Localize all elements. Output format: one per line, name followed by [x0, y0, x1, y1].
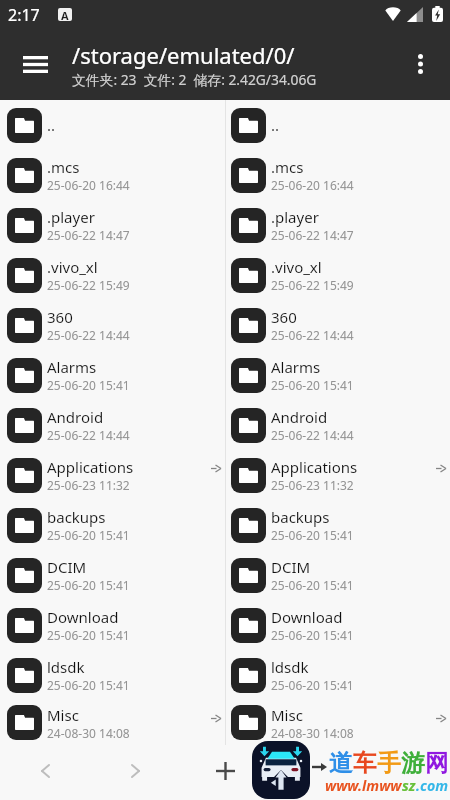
- staticText: ..: [271, 115, 280, 135]
- staticText: backups: [271, 507, 330, 527]
- button[interactable]: DCIM: [226, 550, 450, 600]
- button[interactable]: ldsdk: [226, 650, 450, 700]
- staticText: DCIM: [47, 557, 87, 577]
- staticText: 25-06-22 15:49: [47, 277, 130, 293]
- staticText: 25-06-22 14:44: [47, 327, 130, 343]
- button[interactable]: Android: [0, 400, 225, 450]
- button[interactable]: Applications: [0, 450, 225, 500]
- staticText: .player: [271, 207, 319, 227]
- staticText: DCIM: [271, 557, 311, 577]
- staticText: 25-06-22 14:44: [47, 427, 130, 443]
- button[interactable]: ldsdk: [0, 650, 225, 700]
- staticText: 文件夹: 23 文件: 2 储存: 2.42G/34.06G: [72, 70, 317, 89]
- staticText: 车: [353, 748, 377, 778]
- staticText: 25-06-22 15:49: [271, 277, 354, 293]
- staticText: 25-06-20 16:44: [271, 177, 354, 193]
- button[interactable]: Misc: [226, 700, 450, 745]
- button[interactable]: .player: [0, 200, 225, 250]
- staticText: Applications: [271, 457, 358, 477]
- button[interactable]: DCIM: [0, 550, 225, 600]
- staticText: 25-06-22 14:47: [47, 227, 130, 243]
- staticText: ..: [47, 115, 56, 135]
- staticText: .com: [416, 776, 449, 795]
- staticText: www.lmww: [325, 776, 402, 795]
- staticText: 25-06-20 15:41: [271, 377, 354, 393]
- staticText: Misc: [271, 705, 303, 725]
- staticText: Android: [271, 407, 328, 427]
- staticText: 24-08-30 14:08: [47, 725, 130, 741]
- staticText: Android: [47, 407, 104, 427]
- staticText: Misc: [47, 705, 79, 725]
- button[interactable]: Menu: [10, 39, 60, 89]
- staticText: Download: [47, 607, 119, 627]
- button[interactable]: .vivo_xl: [226, 250, 450, 300]
- staticText: 25-06-20 15:41: [47, 527, 130, 543]
- button[interactable]: 360: [0, 300, 225, 350]
- staticText: 360: [271, 307, 297, 327]
- staticText: 25-06-23 11:32: [271, 477, 354, 493]
- button[interactable]: More options: [398, 42, 442, 86]
- staticText: 25-06-20 15:41: [271, 527, 354, 543]
- staticText: A: [61, 8, 69, 21]
- staticText: .vivo_xl: [47, 257, 98, 277]
- staticText: 360: [47, 307, 73, 327]
- button[interactable]: Forward: [117, 753, 153, 789]
- staticText: 25-06-20 15:41: [271, 577, 354, 593]
- button[interactable]: backups: [226, 500, 450, 550]
- staticText: .vivo_xl: [271, 257, 322, 277]
- button[interactable]: 360: [226, 300, 450, 350]
- staticText: 2:17: [8, 4, 40, 26]
- staticText: Alarms: [47, 357, 97, 377]
- staticText: 25-06-20 15:41: [47, 377, 130, 393]
- button[interactable]: Alarms: [226, 350, 450, 400]
- button[interactable]: .mcs: [226, 150, 450, 200]
- staticText: 25-06-22 14:44: [271, 427, 354, 443]
- staticText: /storage/emulated/0/: [72, 40, 295, 70]
- staticText: ldsdk: [47, 657, 85, 677]
- staticText: 道: [329, 748, 353, 778]
- button[interactable]: Android: [226, 400, 450, 450]
- button[interactable]: backups: [0, 500, 225, 550]
- staticText: 25-06-20 15:41: [271, 677, 354, 693]
- staticText: 24-08-30 14:08: [271, 725, 354, 741]
- staticText: 25-06-20 16:44: [47, 177, 130, 193]
- staticText: 25-06-22 14:44: [271, 327, 354, 343]
- staticText: 25-06-20 15:41: [271, 627, 354, 643]
- button[interactable]: .player: [226, 200, 450, 250]
- staticText: Alarms: [271, 357, 321, 377]
- staticText: 25-06-23 11:32: [47, 477, 130, 493]
- button[interactable]: Download: [0, 600, 225, 650]
- staticText: 手: [377, 748, 401, 778]
- staticText: 25-06-22 14:47: [271, 227, 354, 243]
- staticText: sz: [402, 776, 416, 795]
- button[interactable]: Add: [207, 753, 243, 789]
- staticText: 25-06-20 15:41: [47, 577, 130, 593]
- button[interactable]: ..: [226, 100, 450, 150]
- staticText: .mcs: [47, 157, 80, 177]
- staticText: 25-06-20 15:41: [47, 677, 130, 693]
- button[interactable]: ..: [0, 100, 225, 150]
- button[interactable]: Alarms: [0, 350, 225, 400]
- staticText: 游: [401, 748, 425, 778]
- staticText: 25-06-20 15:41: [47, 627, 130, 643]
- staticText: Download: [271, 607, 343, 627]
- staticText: 网: [425, 748, 449, 778]
- button[interactable]: Download: [226, 600, 450, 650]
- button[interactable]: .vivo_xl: [0, 250, 225, 300]
- staticText: .mcs: [271, 157, 304, 177]
- staticText: backups: [47, 507, 106, 527]
- staticText: Applications: [47, 457, 134, 477]
- button[interactable]: Applications: [226, 450, 450, 500]
- staticText: .player: [47, 207, 95, 227]
- button[interactable]: Misc: [0, 700, 225, 745]
- button[interactable]: .mcs: [0, 150, 225, 200]
- button[interactable]: Back: [27, 753, 63, 789]
- staticText: ldsdk: [271, 657, 309, 677]
